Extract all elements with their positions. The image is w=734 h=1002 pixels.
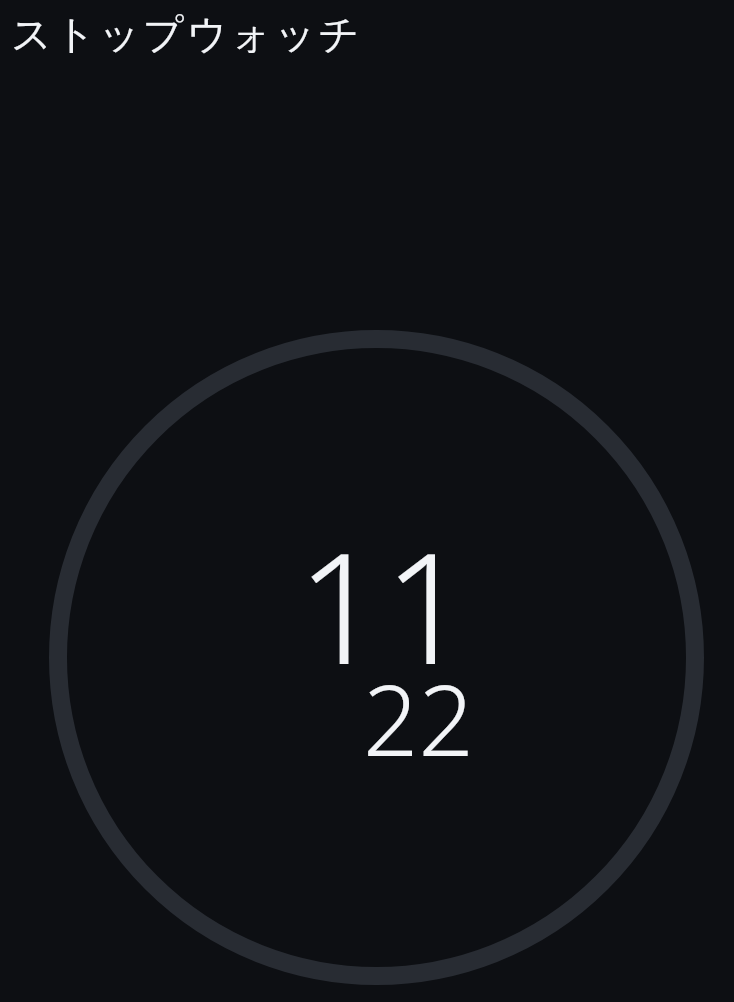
other: Stopwatch progress ring [0, 0, 734, 1002]
staticText: 22 [363, 652, 474, 784]
button[interactable]: Start or stop stopwatch [0, 0, 734, 1002]
staticText: 11 [297, 502, 471, 709]
staticText: ストップウォッチ [11, 9, 363, 59]
